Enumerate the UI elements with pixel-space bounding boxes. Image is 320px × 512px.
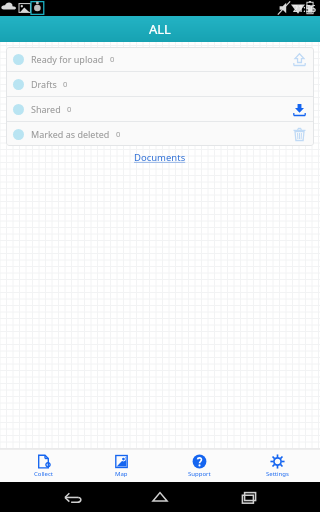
button[interactable]: Collect — [8, 449, 78, 482]
button[interactable]: Delete — [289, 124, 309, 144]
button[interactable]: Marked as deleted — [6, 122, 314, 146]
button[interactable]: Upload — [289, 49, 309, 69]
staticText: Marked as deleted — [31, 128, 110, 140]
staticText: 0 — [110, 54, 115, 64]
staticText: Documents — [134, 151, 186, 164]
staticText: Collect — [34, 470, 53, 478]
button[interactable]: Back — [55, 482, 89, 512]
button[interactable]: Home — [143, 482, 177, 512]
button[interactable]: Shared — [6, 97, 314, 121]
button[interactable]: Settings — [242, 449, 312, 482]
button[interactable]: Documents — [130, 150, 190, 165]
staticText: Ready for upload — [31, 53, 104, 65]
staticText: ALL — [149, 20, 171, 38]
button[interactable]: Recent apps — [232, 482, 266, 512]
button[interactable]: Map — [86, 449, 156, 482]
button[interactable]: ALL — [0, 16, 320, 42]
staticText: 0 — [67, 104, 72, 114]
button[interactable]: Drafts — [6, 72, 314, 96]
staticText: Drafts — [31, 78, 57, 90]
button[interactable]: Support — [164, 449, 234, 482]
staticText: Shared — [31, 103, 61, 115]
staticText: Support — [188, 470, 211, 478]
staticText: Settings — [266, 470, 289, 478]
staticText: 0 — [116, 129, 121, 139]
staticText: Map — [115, 470, 128, 478]
staticText: 21:56 — [293, 2, 317, 14]
button[interactable]: Download — [289, 99, 309, 119]
staticText: 0 — [63, 79, 68, 89]
button[interactable]: Ready for upload — [6, 47, 314, 71]
